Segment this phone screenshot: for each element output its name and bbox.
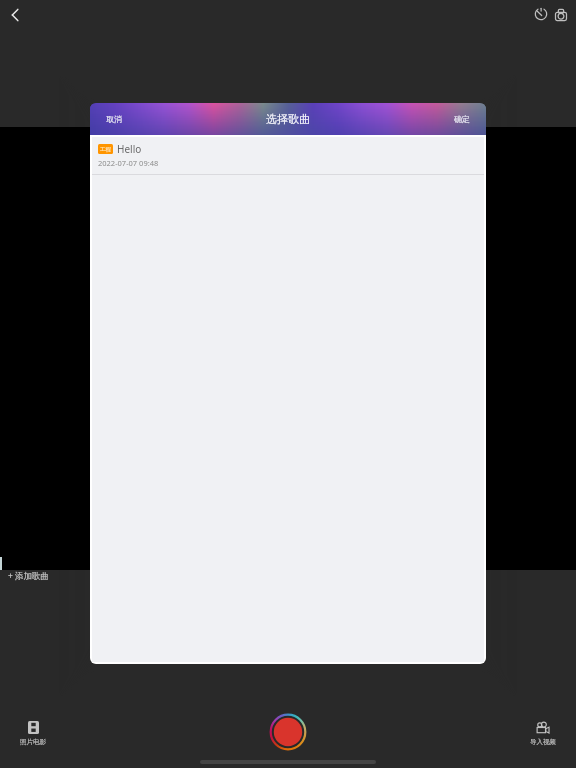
button[interactable]: 工程 xyxy=(92,137,484,174)
staticText: 取消 xyxy=(106,114,122,124)
button[interactable]: 照片电影 xyxy=(9,716,57,750)
button[interactable]: Camera xyxy=(547,1,575,29)
button[interactable]: 取消 xyxy=(90,107,138,131)
staticText: 选择歌曲 xyxy=(266,112,310,126)
button[interactable]: Back xyxy=(1,1,29,29)
button[interactable]: Record xyxy=(268,712,308,752)
staticText: 照片电影 xyxy=(20,738,46,746)
button[interactable]: + 添加歌曲 xyxy=(2,568,56,584)
button[interactable]: 确定 xyxy=(438,107,486,131)
staticText: 2022-07-07 09:48 xyxy=(98,158,159,168)
staticText: 确定 xyxy=(454,114,470,124)
staticText: 工程 xyxy=(100,146,111,153)
staticText: Hello xyxy=(117,142,142,156)
button[interactable]: Timer xyxy=(527,0,555,28)
staticText: 导入视频 xyxy=(530,738,556,746)
button[interactable]: 导入视频 xyxy=(519,716,567,750)
staticText: + 添加歌曲 xyxy=(8,570,50,582)
